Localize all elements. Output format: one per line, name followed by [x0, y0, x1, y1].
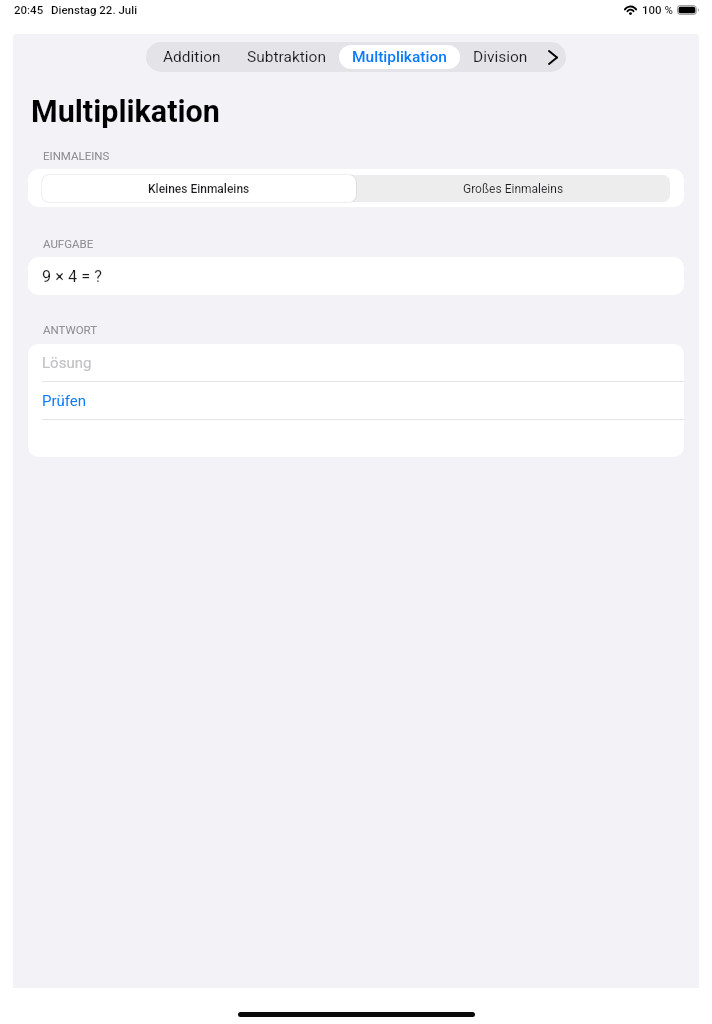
staticText: Division [473, 48, 528, 66]
staticText: Multiplikation [31, 94, 220, 130]
staticText: Dienstag 22. Juli [51, 3, 138, 16]
button[interactable]: Prüfen [28, 382, 684, 419]
button[interactable]: Subtraktion [234, 45, 339, 69]
staticText: Kleines Einmaleins [148, 182, 250, 196]
button[interactable]: Lösung [28, 344, 684, 381]
staticText: 100 % [642, 3, 673, 16]
button[interactable]: Großes Einmaleins [356, 175, 670, 202]
button[interactable]: Kleines Einmaleins [42, 175, 356, 202]
staticText: Lösung [42, 354, 92, 372]
staticText: Subtraktion [247, 48, 326, 66]
staticText: 20:45 [14, 3, 44, 16]
button[interactable]: Multiplikation [339, 45, 460, 69]
button[interactable]: Weitere Kategorien [541, 42, 566, 72]
staticText: ANTWORT [43, 323, 98, 336]
staticText: 9 × 4 = ? [42, 267, 102, 286]
staticText: Addition [163, 48, 221, 66]
button[interactable]: Division [460, 45, 541, 69]
staticText: EINMALEINS [43, 149, 110, 162]
staticText: Großes Einmaleins [463, 182, 564, 196]
staticText: Prüfen [42, 392, 87, 410]
staticText: AUFGABE [43, 237, 94, 250]
staticText: Multiplikation [352, 48, 447, 66]
button[interactable]: Addition [150, 45, 234, 69]
